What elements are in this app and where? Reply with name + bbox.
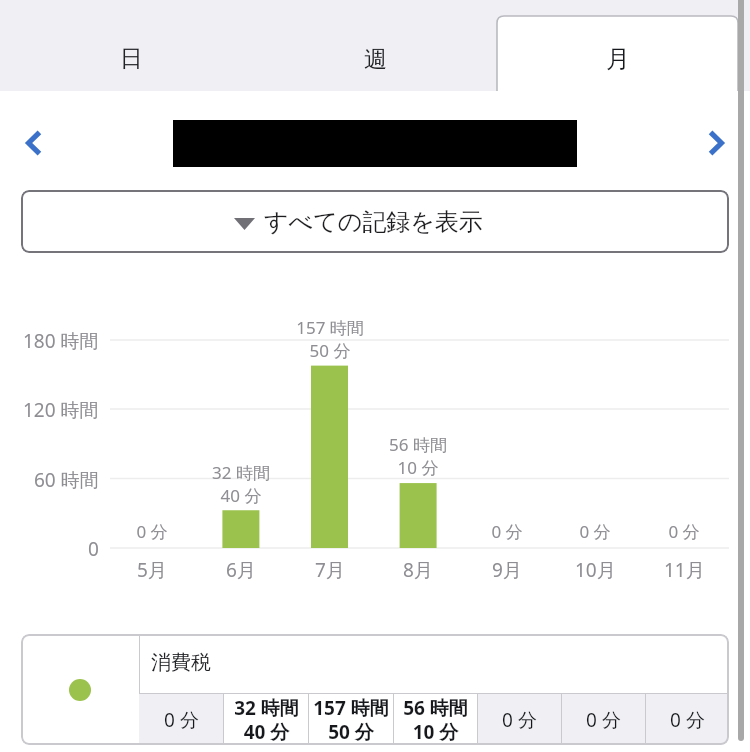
staticText: 消費税 (151, 650, 211, 675)
staticText: 週 (364, 45, 387, 74)
staticText: 120 時間 (23, 397, 99, 423)
staticText: 32 時間 40 分 (212, 461, 270, 507)
button[interactable]: Previous month (9, 118, 59, 168)
staticText: 0 分 (670, 707, 705, 733)
staticText: 180 時間 (23, 328, 99, 354)
button[interactable]: すべての記録を表示 (21, 190, 729, 253)
staticText: 月 (606, 44, 630, 74)
button[interactable]: 週 (253, 0, 497, 91)
staticText: 6月 (226, 557, 256, 583)
staticText: 0 (88, 536, 99, 562)
staticText: 60 時間 (34, 467, 99, 493)
staticText: 56 時間 10 分 (403, 695, 468, 744)
staticText: 10月 (575, 557, 616, 583)
button[interactable]: Next month (691, 118, 741, 168)
button[interactable]: 消費税 (21, 634, 729, 745)
staticText: 0 分 (164, 707, 199, 733)
staticText: 56 時間 10 分 (389, 433, 447, 479)
staticText: すべての記録を表示 (264, 207, 483, 237)
staticText: 0 分 (668, 520, 700, 543)
staticText: 0 分 (491, 520, 523, 543)
staticText: 32 時間 40 分 (234, 695, 299, 744)
staticText: 0 分 (586, 707, 621, 733)
button[interactable]: 日 (9, 0, 253, 91)
staticText: 0 分 (579, 520, 611, 543)
staticText: 9月 (492, 557, 522, 583)
button[interactable]: 月 (497, 16, 738, 91)
staticText: 0 分 (502, 707, 537, 733)
staticText: 0 分 (136, 520, 168, 543)
staticText: 11月 (664, 557, 705, 583)
staticText: 7月 (315, 557, 345, 583)
staticText: 5月 (137, 557, 167, 583)
staticText: 8月 (403, 557, 433, 583)
staticText: 日 (120, 44, 143, 73)
staticText: 157 時間 50 分 (296, 316, 364, 362)
staticText: 157 時間 50 分 (313, 695, 389, 744)
